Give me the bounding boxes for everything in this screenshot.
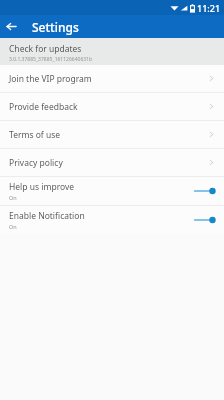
staticText: Terms of use <box>9 129 208 141</box>
button[interactable]: Privacy policy <box>0 149 224 176</box>
button[interactable]: Terms of use <box>0 121 224 148</box>
staticText: 3.0.1.37885_37885_161126640631b <box>9 56 93 63</box>
button[interactable]: Back <box>0 15 23 38</box>
staticText: Privacy policy <box>9 157 208 169</box>
staticText: Join the VIP program <box>9 73 208 85</box>
button[interactable]: Join the VIP program <box>0 65 224 92</box>
button[interactable]: Check for updates <box>0 38 224 65</box>
button[interactable]: Help us improve <box>0 177 224 205</box>
staticText: Help us improve <box>9 181 75 193</box>
button[interactable]: Provide feedback <box>0 93 224 120</box>
staticText: On <box>9 194 17 201</box>
staticText: Check for updates <box>9 43 82 55</box>
staticText: Provide feedback <box>9 101 208 113</box>
staticText: Enable Notification <box>9 210 85 222</box>
staticText: On <box>9 223 17 230</box>
staticText: Settings <box>32 19 79 35</box>
staticText: 11:21 <box>197 2 221 14</box>
button[interactable]: Enable Notification <box>0 206 224 234</box>
